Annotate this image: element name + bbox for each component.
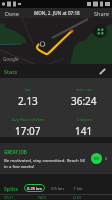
staticText: 2.13	[18, 94, 38, 108]
staticText: Stats	[4, 68, 18, 75]
staticText: PACE	[38, 195, 73, 200]
staticText: Splits	[4, 185, 19, 192]
staticText: Avg Pace min/km	[12, 117, 44, 122]
staticText: Calories	[77, 117, 92, 122]
button[interactable]: Expand map	[93, 24, 107, 38]
staticText: Done	[5, 10, 19, 16]
staticText: GREAT JOB	[4, 149, 27, 155]
staticText: 141	[75, 124, 93, 137]
button[interactable]: Edit	[96, 65, 108, 77]
button[interactable]: Done	[0, 8, 22, 18]
button[interactable]: 0.25 km	[24, 184, 45, 192]
staticText: ELEV	[73, 195, 108, 200]
staticText: MON, 2. JUN at 07:18	[34, 10, 80, 16]
staticText: Share	[94, 10, 109, 16]
staticText: 0.25 km	[27, 186, 42, 191]
staticText: km	[25, 87, 31, 92]
staticText: 1 km	[73, 186, 83, 191]
button[interactable]: GREAT JOB	[0, 143, 112, 174]
staticText: SPLIT	[4, 195, 38, 200]
staticText: 5K	[94, 156, 99, 161]
staticText: Be motivated, stay committed. Reach 5K i…	[4, 157, 86, 169]
button[interactable]: Share	[91, 8, 112, 18]
staticText: 0.5 km	[51, 186, 64, 191]
staticText: min : sec	[76, 87, 92, 92]
button[interactable]: 0.5 km	[48, 184, 67, 192]
staticText: 36:24	[71, 94, 97, 108]
staticText: Google	[3, 56, 19, 62]
button[interactable]: 1 km	[70, 184, 86, 192]
staticText: 17:07	[15, 124, 41, 137]
